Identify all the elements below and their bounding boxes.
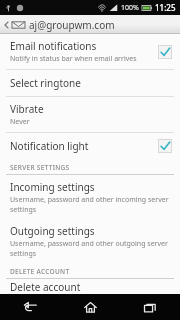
staticText: Vibrate xyxy=(10,102,44,116)
staticText: SERVER SETTINGS xyxy=(10,163,70,172)
staticText: Select ringtone xyxy=(10,76,172,90)
button[interactable]: Notification light xyxy=(0,133,180,159)
staticText: aj@groupwm.com xyxy=(29,18,115,32)
other: Navigate up xyxy=(3,19,10,31)
staticText: 11:25 xyxy=(155,2,176,13)
staticText: Username, password and other incoming se… xyxy=(10,195,169,205)
staticText: Notification light xyxy=(10,139,158,153)
staticText: settings xyxy=(10,205,37,215)
button[interactable]: Vibrate xyxy=(0,97,180,132)
staticText: Username, password and other outgoing se… xyxy=(10,239,168,249)
button[interactable]: Incoming settings xyxy=(0,175,180,219)
staticText: 100% xyxy=(121,3,139,13)
staticText: Never xyxy=(10,117,30,127)
staticText: Delete account xyxy=(10,280,172,294)
staticText: DELETE ACCOUNT xyxy=(10,267,70,276)
button[interactable]: Delete account xyxy=(0,279,180,294)
button[interactable]: Outgoing settings xyxy=(0,219,180,263)
staticText: settings xyxy=(10,249,37,259)
button[interactable]: Home xyxy=(60,294,120,320)
staticText: Notify in status bar when email arrives xyxy=(10,54,137,64)
staticText: Outgoing settings xyxy=(10,224,95,238)
button[interactable]: Select ringtone xyxy=(0,70,180,96)
button[interactable]: Email notifications xyxy=(0,34,180,69)
button[interactable]: Navigate up xyxy=(0,15,180,34)
button[interactable]: Back xyxy=(0,294,60,320)
staticText: Incoming settings xyxy=(10,180,95,194)
staticText: Email notifications xyxy=(10,39,97,53)
button[interactable]: Recent apps xyxy=(120,294,180,320)
